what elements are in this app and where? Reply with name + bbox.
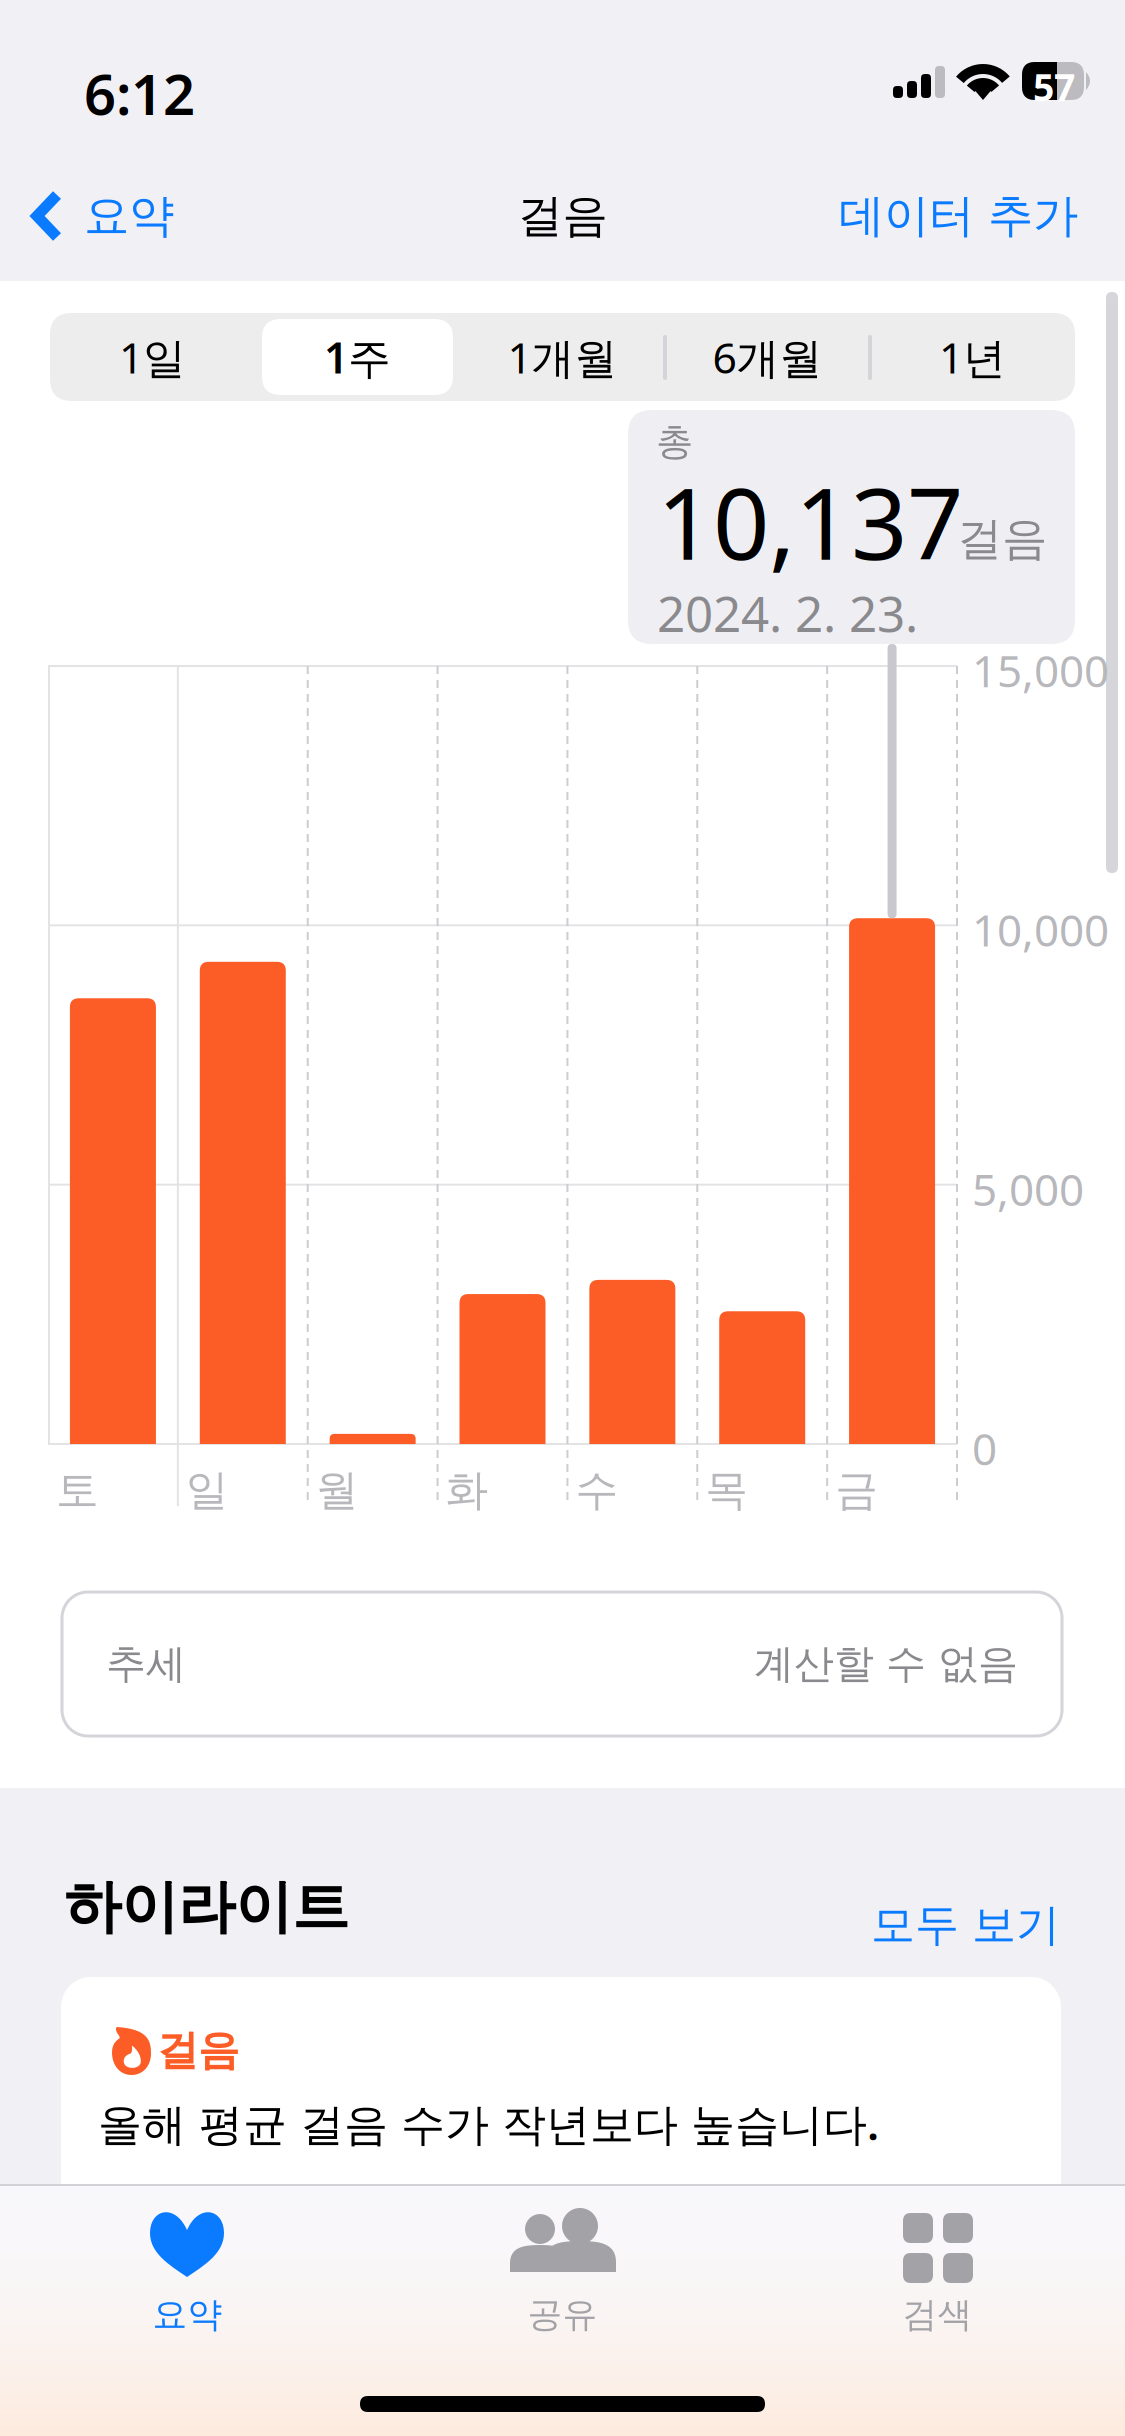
staticText: 0 [972,1419,997,1477]
button[interactable]: 요약 [0,168,198,264]
button[interactable]: 추세 [62,1592,1062,1736]
staticText: 총 [656,419,693,465]
staticText: 검색 [902,2293,972,2336]
button[interactable]: 걸음 [61,1977,1061,2307]
staticText: 토 [56,1464,99,1516]
staticText: 5,000 [972,1160,1084,1218]
button[interactable]: 데이터 추가 [0,168,1125,264]
staticText: 10,000 [972,900,1109,959]
button[interactable]: 검색 [750,2186,1125,2336]
staticText: 1일 [119,329,186,385]
staticText: 공유 [527,2293,597,2336]
staticText: 금 [835,1464,878,1516]
staticText: 6개월 [712,329,822,385]
staticText: 올해 평균 걸음 수가 작년보다 높습니다. [98,2094,879,2152]
button[interactable]: 1주 [255,313,460,401]
staticText: 6:12 [84,56,195,130]
staticText: 10,137 [657,456,963,587]
button[interactable]: 1년 [870,313,1075,401]
staticText: 데이터 추가 [839,188,1078,244]
staticText: 하이라이트 [64,1872,349,1942]
staticText: 모두 보기 [871,1898,1060,1952]
staticText: 15,000 [972,641,1109,699]
staticText: 1년 [939,329,1006,385]
staticText: 추세 [106,1639,186,1688]
staticText: 일 [186,1464,229,1516]
staticText: 1주 [324,329,391,385]
staticText: 57 [1033,62,1075,112]
button[interactable]: 모두 보기 [857,1884,1074,1966]
staticText: 계산할 수 없음 [754,1639,1018,1688]
button[interactable]: 1개월 [460,313,665,401]
staticText: 걸음 [517,188,607,244]
button[interactable]: 1일 [50,313,255,401]
staticText: 수 [575,1464,618,1516]
staticText: 목 [705,1464,748,1516]
staticText: 걸음 [957,511,1047,567]
staticText: 월 [316,1464,359,1516]
staticText: 1개월 [507,329,617,385]
staticText: 화 [446,1464,489,1516]
button[interactable]: 요약 [0,2186,375,2336]
staticText: 요약 [152,2293,222,2336]
staticText: 2024. 2. 23. [657,580,918,645]
button[interactable]: 공유 [375,2186,750,2336]
button[interactable]: 6개월 [665,313,870,401]
staticText: 걸음 [157,2025,239,2076]
staticText: 요약 [84,188,174,244]
